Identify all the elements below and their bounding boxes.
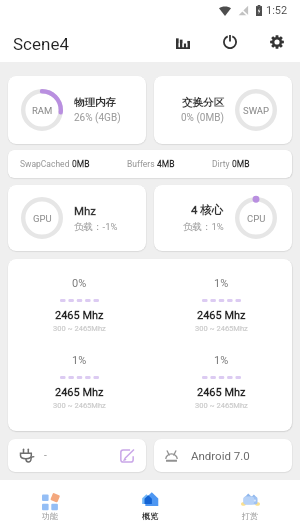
- staticText: 交换分区: [182, 96, 224, 109]
- staticText: 概览: [142, 511, 158, 521]
- staticText: Scene4: [13, 34, 69, 54]
- button[interactable]: SwapCached: [8, 150, 292, 178]
- staticText: 打赏: [242, 511, 258, 521]
- staticText: 2465 Mhz: [197, 386, 246, 399]
- button[interactable]: 交换分区: [154, 76, 292, 144]
- staticText: 300 ~ 2465Mhz: [53, 401, 106, 410]
- staticText: 负载：1%: [183, 221, 224, 233]
- button[interactable]: Android 7.0: [154, 439, 292, 472]
- button[interactable]: Edit: [118, 447, 136, 465]
- staticText: 1%: [214, 277, 229, 290]
- button[interactable]: 功能: [0, 480, 100, 531]
- staticText: 2465 Mhz: [55, 386, 104, 399]
- button[interactable]: 1%: [150, 354, 292, 410]
- button[interactable]: Settings: [259, 24, 295, 60]
- staticText: 4 核心: [191, 203, 224, 217]
- staticText: 0MB: [232, 159, 250, 169]
- staticText: 负载：-1%: [74, 221, 118, 233]
- staticText: 1%: [72, 354, 87, 367]
- staticText: 300 ~ 2465Mhz: [195, 324, 248, 333]
- staticText: 0%: [72, 277, 87, 290]
- button[interactable]: -: [8, 439, 146, 472]
- button[interactable]: 1%: [150, 277, 292, 333]
- button[interactable]: Power: [212, 24, 248, 60]
- button[interactable]: 4 核心: [154, 185, 292, 251]
- staticText: Buffers: [127, 159, 157, 169]
- staticText: 2465 Mhz: [55, 309, 104, 322]
- staticText: 300 ~ 2465Mhz: [195, 401, 248, 410]
- staticText: 4MB: [157, 159, 175, 169]
- staticText: 1%: [214, 354, 229, 367]
- staticText: CPU: [247, 213, 266, 224]
- staticText: 0% (0MB): [181, 112, 224, 124]
- staticText: 功能: [42, 511, 58, 521]
- staticText: 1:52: [266, 4, 288, 17]
- staticText: 26% (4GB): [74, 112, 121, 124]
- button[interactable]: GPU: [8, 185, 146, 251]
- button[interactable]: RAM: [8, 76, 146, 144]
- staticText: Android 7.0: [191, 449, 250, 462]
- staticText: GPU: [33, 213, 52, 224]
- staticText: RAM: [32, 105, 53, 116]
- staticText: SWAP: [243, 105, 270, 116]
- button[interactable]: 概览: [100, 480, 200, 531]
- staticText: 300 ~ 2465Mhz: [53, 324, 106, 333]
- staticText: SwapCached: [20, 159, 72, 169]
- button[interactable]: 0%: [8, 277, 150, 333]
- button[interactable]: 1%: [8, 354, 150, 410]
- button[interactable]: 打赏: [200, 480, 300, 531]
- staticText: Dirty: [212, 159, 232, 169]
- staticText: 物理内存: [74, 96, 116, 109]
- staticText: 0MB: [72, 159, 90, 169]
- staticText: Mhz: [74, 204, 97, 217]
- staticText: -: [44, 450, 47, 462]
- button[interactable]: Statistics: [165, 24, 201, 60]
- staticText: 2465 Mhz: [197, 309, 246, 322]
